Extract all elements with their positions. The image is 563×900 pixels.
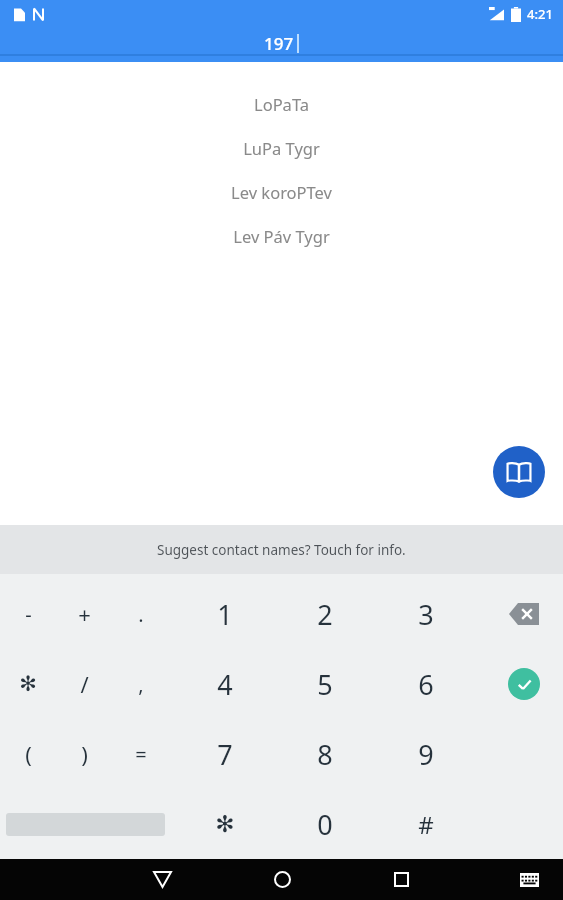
staticText: 3 xyxy=(418,596,434,633)
staticText: 7 xyxy=(217,736,233,773)
button[interactable]: = xyxy=(107,719,175,789)
button[interactable]: 6 xyxy=(392,649,460,719)
button[interactable]: Lev koroPTev xyxy=(0,170,563,214)
staticText: 0 xyxy=(317,806,333,843)
button[interactable]: 3 xyxy=(392,579,460,649)
staticText: ✻ xyxy=(19,672,37,696)
button[interactable]: Suggest contact names? Touch for info. xyxy=(0,525,563,574)
button[interactable]: Lev Páv Tygr xyxy=(0,214,563,258)
button[interactable]: ) xyxy=(50,719,118,789)
staticText: # xyxy=(418,808,434,841)
button[interactable]: Space xyxy=(6,789,165,859)
staticText: LoPaTa xyxy=(254,93,309,115)
button[interactable]: Backspace xyxy=(490,579,558,649)
button[interactable]: # xyxy=(392,789,460,859)
staticText: 5 xyxy=(317,666,333,703)
staticText: Suggest contact names? Touch for info. xyxy=(157,541,406,559)
staticText: / xyxy=(80,669,89,699)
button[interactable]: Home xyxy=(258,859,306,900)
button[interactable]: 0 xyxy=(291,789,359,859)
button[interactable]: 7 xyxy=(191,719,259,789)
button[interactable]: Dictionary xyxy=(493,446,545,498)
button[interactable]: / xyxy=(50,649,118,719)
staticText: + xyxy=(78,599,91,629)
staticText: LuPa Tygr xyxy=(243,137,320,159)
staticText: 1 xyxy=(217,596,233,633)
button[interactable]: 9 xyxy=(392,719,460,789)
staticText: = xyxy=(135,741,147,768)
button[interactable]: , xyxy=(107,649,175,719)
staticText: ✻ xyxy=(215,811,235,838)
button[interactable]: 197 xyxy=(0,28,563,58)
button[interactable]: ✻ xyxy=(0,649,62,719)
staticText: Lev koroPTev xyxy=(231,181,332,203)
staticText: 6 xyxy=(418,666,434,703)
button[interactable]: LoPaTa xyxy=(0,82,563,126)
button[interactable]: - xyxy=(0,579,62,649)
staticText: 9 xyxy=(418,736,434,773)
staticText: 4:21 xyxy=(527,5,553,23)
staticText: ( xyxy=(25,739,32,769)
button[interactable]: + xyxy=(50,579,118,649)
staticText: . xyxy=(138,601,144,628)
button[interactable]: 5 xyxy=(291,649,359,719)
button[interactable]: 2 xyxy=(291,579,359,649)
button[interactable]: 4 xyxy=(191,649,259,719)
staticText: Lev Páv Tygr xyxy=(233,225,330,247)
staticText: , xyxy=(138,671,144,698)
staticText: - xyxy=(25,601,32,628)
button[interactable]: LuPa Tygr xyxy=(0,126,563,170)
button[interactable]: Recent apps xyxy=(377,859,425,900)
button[interactable]: Back xyxy=(138,859,186,900)
button[interactable]: Enter xyxy=(490,649,558,719)
button[interactable]: Switch keyboard xyxy=(509,860,549,900)
button[interactable]: 1 xyxy=(191,579,259,649)
staticText: 8 xyxy=(317,736,333,773)
button[interactable]: . xyxy=(107,579,175,649)
staticText: ) xyxy=(81,739,88,769)
staticText: 197 xyxy=(264,32,294,55)
staticText: 2 xyxy=(317,596,333,633)
button[interactable]: 8 xyxy=(291,719,359,789)
button[interactable]: ✻ xyxy=(191,789,259,859)
button[interactable]: ( xyxy=(0,719,62,789)
staticText: 4 xyxy=(217,666,233,703)
